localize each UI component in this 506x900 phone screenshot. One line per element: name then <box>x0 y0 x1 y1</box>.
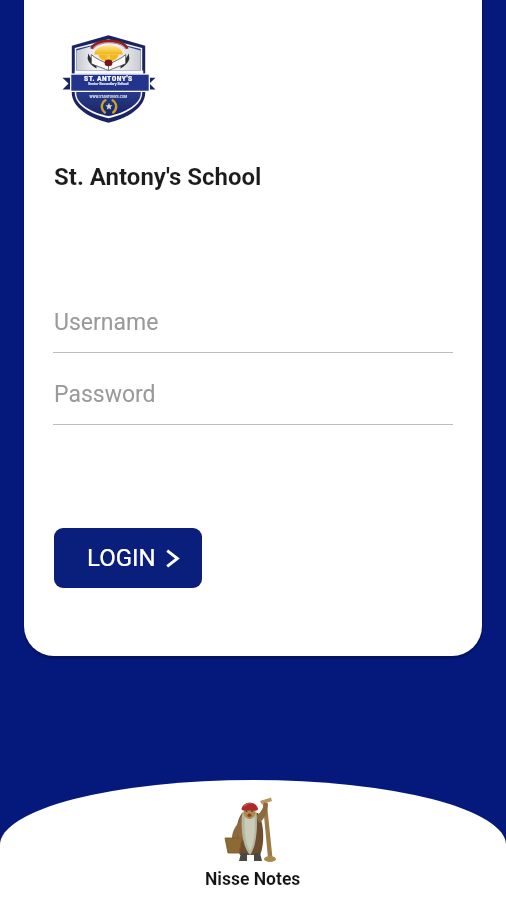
button[interactable]: Password <box>53 381 453 425</box>
button[interactable]: LOGIN <box>54 528 202 588</box>
button[interactable]: Username <box>53 309 453 353</box>
other: Nisse Notes logo <box>220 796 282 866</box>
staticText: St. Antony's School <box>54 163 262 191</box>
staticText: Username <box>54 309 159 336</box>
staticText: Nisse Notes <box>205 869 301 890</box>
staticText: LOGIN <box>87 544 156 572</box>
staticText: Password <box>54 381 156 408</box>
other: St. Antony's School logo <box>63 35 156 124</box>
